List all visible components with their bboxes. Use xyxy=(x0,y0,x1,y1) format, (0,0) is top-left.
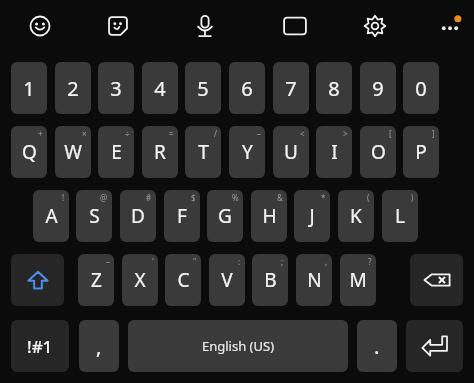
staticText: – xyxy=(106,256,110,267)
staticText: 8 xyxy=(328,75,340,102)
staticText: J xyxy=(309,203,315,229)
button[interactable]: GIF xyxy=(275,6,315,46)
staticText: H xyxy=(262,203,277,229)
staticText: B xyxy=(264,267,277,293)
button[interactable]: Backspace xyxy=(410,254,463,306)
button[interactable]: 0 xyxy=(403,62,439,114)
button[interactable]: X xyxy=(122,254,158,306)
staticText: V xyxy=(221,267,233,293)
staticText: 2 xyxy=(67,75,79,102)
button[interactable]: V xyxy=(209,254,245,306)
button[interactable]: L xyxy=(382,190,418,242)
button[interactable]: N xyxy=(296,254,332,306)
staticText: Z xyxy=(91,267,102,293)
staticText: A xyxy=(45,203,58,229)
staticText: 1 xyxy=(23,75,35,102)
staticText: U xyxy=(284,139,298,165)
button[interactable]: 9 xyxy=(360,62,396,114)
button[interactable]: E xyxy=(98,126,134,178)
button[interactable]: Y xyxy=(229,126,265,178)
staticText: . xyxy=(374,333,380,360)
button[interactable]: 8 xyxy=(316,62,352,114)
staticText: 6 xyxy=(241,75,253,102)
staticText: ' xyxy=(152,256,154,267)
staticText: P xyxy=(415,139,427,165)
button[interactable]: W xyxy=(55,126,91,178)
staticText: , xyxy=(96,333,102,360)
button[interactable]: 3 xyxy=(98,62,134,114)
staticText: Q xyxy=(22,139,37,165)
staticText: & xyxy=(277,192,283,203)
button[interactable]: 5 xyxy=(185,62,221,114)
staticText: M xyxy=(349,267,367,293)
staticText: " xyxy=(193,256,197,267)
staticText: W xyxy=(64,139,82,165)
button[interactable]: 2 xyxy=(55,62,91,114)
button[interactable]: K xyxy=(338,190,374,242)
staticText: > xyxy=(343,128,348,139)
button[interactable]: Voice input xyxy=(185,6,225,46)
button[interactable]: P xyxy=(403,126,439,178)
button[interactable]: O xyxy=(360,126,396,178)
button[interactable]: !#1 xyxy=(11,320,69,372)
button[interactable]: Z xyxy=(78,254,114,306)
staticText: !#1 xyxy=(27,335,53,358)
button[interactable]: B xyxy=(252,254,288,306)
button[interactable]: Settings xyxy=(355,6,395,46)
button[interactable]: I xyxy=(316,126,352,178)
staticText: + xyxy=(38,128,43,139)
button[interactable]: J xyxy=(294,190,330,242)
staticText: ! xyxy=(62,192,65,203)
staticText: / xyxy=(214,128,217,139)
button[interactable]: Stickers xyxy=(98,6,138,46)
staticText: 5 xyxy=(197,75,209,102)
staticText: % xyxy=(232,192,239,203)
button[interactable]: C xyxy=(165,254,201,306)
staticText: S xyxy=(89,203,100,229)
button[interactable]: T xyxy=(185,126,221,178)
staticText: ÷ xyxy=(125,128,130,139)
staticText: ] xyxy=(432,128,435,139)
button[interactable]: , xyxy=(79,320,119,372)
button[interactable]: English (US) xyxy=(128,320,348,372)
button[interactable]: Enter xyxy=(406,320,463,372)
button[interactable]: . xyxy=(357,320,397,372)
staticText: – xyxy=(257,128,261,139)
button[interactable]: A xyxy=(33,190,69,242)
staticText: # xyxy=(146,192,152,203)
button[interactable]: F xyxy=(164,190,200,242)
button[interactable]: Emoji xyxy=(20,6,60,46)
button[interactable]: G xyxy=(207,190,243,242)
staticText: = xyxy=(169,128,174,139)
button[interactable]: M xyxy=(340,254,376,306)
staticText: E xyxy=(111,139,122,165)
staticText: G xyxy=(218,203,232,229)
staticText: * xyxy=(321,192,326,203)
button[interactable]: 6 xyxy=(229,62,265,114)
staticText: English (US) xyxy=(202,337,275,355)
staticText: 0 xyxy=(415,75,427,102)
button[interactable]: 4 xyxy=(142,62,178,114)
staticText: 4 xyxy=(154,75,166,102)
staticText: 7 xyxy=(285,75,297,102)
button[interactable]: 7 xyxy=(273,62,309,114)
staticText: F xyxy=(177,203,187,229)
button[interactable]: Shift xyxy=(11,254,64,306)
staticText: X xyxy=(134,267,146,293)
button[interactable]: 1 xyxy=(11,62,47,114)
button[interactable]: H xyxy=(251,190,287,242)
staticText: N xyxy=(307,267,322,293)
button[interactable]: More options xyxy=(430,6,470,46)
button[interactable]: U xyxy=(273,126,309,178)
staticText: < xyxy=(300,128,305,139)
staticText: L xyxy=(395,203,405,229)
button[interactable]: D xyxy=(120,190,156,242)
button[interactable]: R xyxy=(142,126,178,178)
button[interactable]: S xyxy=(76,190,112,242)
staticText: : xyxy=(238,256,241,267)
staticText: ? xyxy=(368,256,372,267)
staticText: D xyxy=(131,203,145,229)
button[interactable]: Q xyxy=(11,126,47,178)
staticText: 3 xyxy=(110,75,122,102)
staticText: ( xyxy=(367,192,370,203)
